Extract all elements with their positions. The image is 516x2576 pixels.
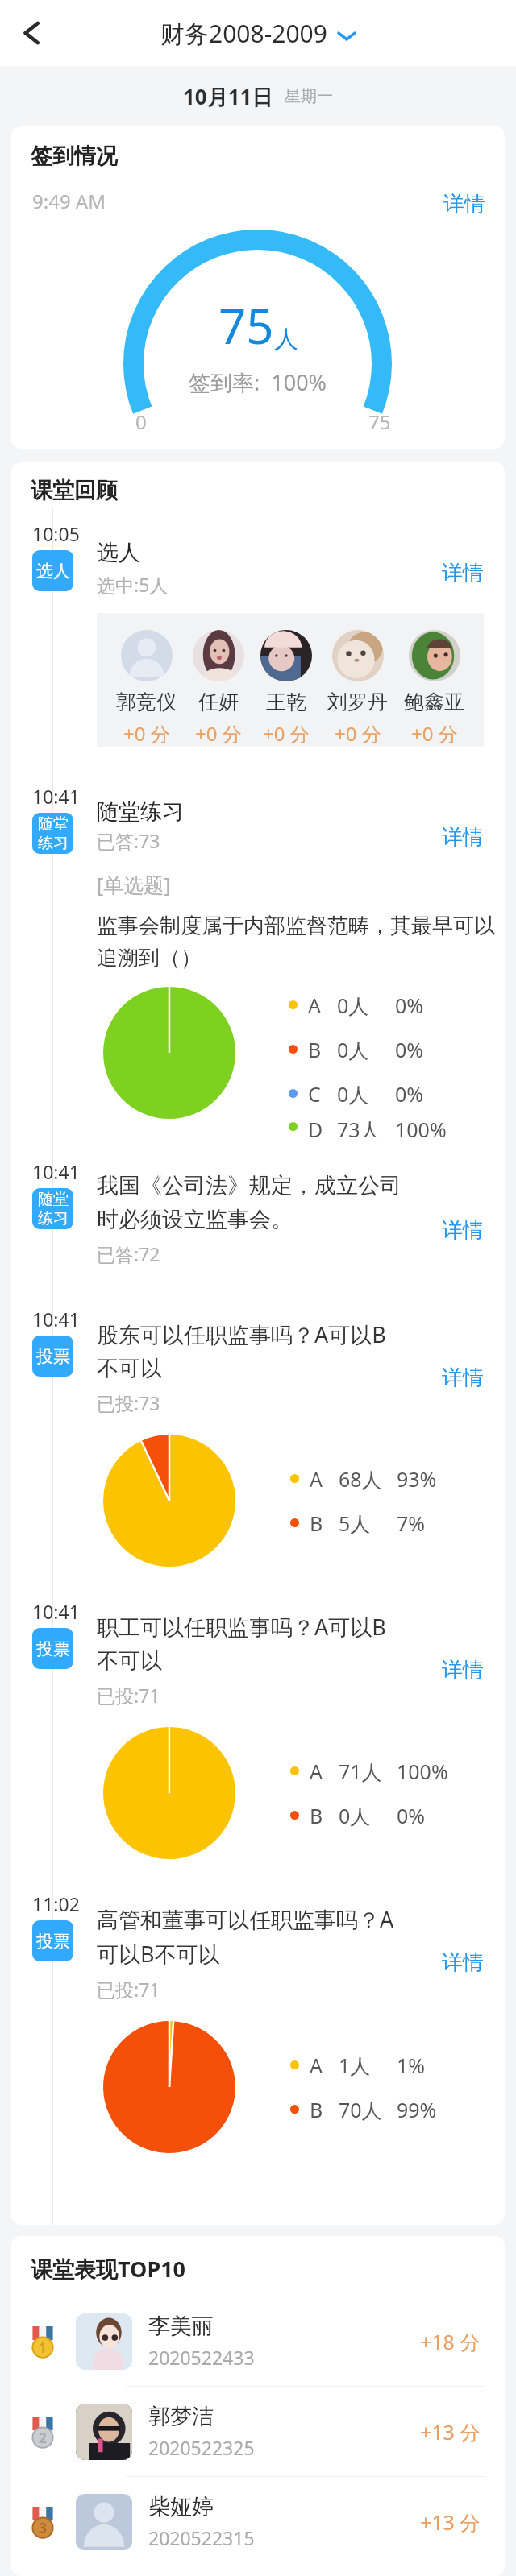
staticText: 2	[39, 2429, 47, 2447]
button[interactable]: 1	[11, 2296, 505, 2387]
button[interactable]: 详情	[442, 1217, 484, 1244]
staticText: 已答:73	[97, 828, 160, 853]
staticText: 王乾	[266, 690, 306, 714]
staticText: 71人	[339, 1758, 382, 1785]
staticText: 0人	[337, 1080, 369, 1108]
button[interactable]: 详情	[442, 1949, 484, 1976]
staticText: 0人	[337, 1036, 369, 1063]
staticText: 已投:71	[97, 1683, 160, 1708]
staticText: 高管和董事可以任职监事吗？A可以B不可以	[97, 1904, 405, 1969]
button[interactable]: 详情	[442, 1365, 484, 1391]
staticText: 0%	[395, 992, 424, 1019]
staticText: A	[310, 1465, 322, 1493]
staticText: 签到情况	[31, 143, 118, 170]
staticText: 10:41	[32, 1159, 80, 1184]
staticText: 75	[368, 408, 391, 435]
staticText: 70人	[339, 2096, 382, 2123]
staticText: A	[310, 2052, 322, 2079]
staticText: +0 分	[411, 720, 458, 747]
staticText: 郭梦洁	[148, 2403, 214, 2430]
staticText: 随堂	[38, 814, 69, 834]
staticText: 10月11日	[183, 82, 273, 111]
staticText: 随堂练习	[97, 798, 184, 826]
staticText: 93%	[397, 1465, 437, 1493]
staticText: 选中:5人	[97, 572, 169, 597]
button[interactable]: 详情	[442, 824, 484, 851]
staticText: 0%	[395, 1080, 424, 1108]
button[interactable]: Back	[6, 9, 55, 57]
staticText: A	[310, 1758, 322, 1785]
staticText: 68人	[339, 1465, 382, 1493]
staticText: 监事会制度属于内部监督范畴，其最早可以追溯到（）	[97, 913, 495, 971]
staticText: 0%	[397, 1802, 426, 1829]
staticText: 投票	[36, 1931, 70, 1952]
staticText: B	[310, 1802, 323, 1829]
staticText: 练习	[38, 834, 69, 853]
staticText: 已投:73	[97, 1390, 160, 1415]
button[interactable]: 详情	[443, 191, 485, 217]
staticText: 100%	[397, 1758, 448, 1785]
button[interactable]: 3	[11, 2477, 505, 2566]
staticText: 投票	[36, 1346, 70, 1367]
staticText: 0%	[395, 1036, 424, 1063]
staticText: 0	[135, 408, 147, 435]
staticText: 选人	[97, 539, 140, 566]
staticText: 5人	[339, 1510, 371, 1537]
staticText: 选人	[36, 561, 70, 582]
staticText: 李美丽	[148, 2313, 214, 2340]
staticText: 1%	[397, 2052, 426, 2079]
button[interactable]: 2	[11, 2387, 505, 2477]
staticText: B	[308, 1036, 322, 1063]
staticText: D	[308, 1116, 323, 1137]
staticText: A	[308, 992, 321, 1019]
staticText: 100%	[395, 1116, 447, 1137]
staticText: 随堂	[38, 1190, 69, 1209]
staticText: 1	[39, 2338, 47, 2357]
staticText: 职工可以任职监事吗？A可以B不可以	[97, 1612, 405, 1675]
staticText: 人	[274, 324, 298, 354]
staticText: +13 分	[420, 2508, 481, 2536]
staticText: +0 分	[263, 720, 310, 747]
staticText: C	[308, 1080, 321, 1108]
staticText: 0人	[339, 1802, 371, 1829]
staticText: 签到率: 100%	[189, 367, 327, 397]
staticText: +13 分	[420, 2418, 481, 2446]
staticText: 鲍鑫亚	[404, 690, 464, 714]
staticText: 郭竞仪	[116, 690, 177, 714]
staticText: 2020522315	[148, 2525, 255, 2550]
staticText: 3	[39, 2519, 47, 2537]
staticText: 投票	[36, 1638, 70, 1659]
staticText: 99%	[397, 2096, 437, 2123]
staticText: 10:41	[32, 1307, 80, 1331]
staticText: [单选题]	[97, 871, 171, 898]
staticText: 2020522325	[148, 2435, 255, 2460]
staticText: B	[310, 1510, 323, 1537]
staticText: 9:49 AM	[32, 188, 106, 214]
staticText: 73人	[337, 1116, 381, 1137]
staticText: 已投:71	[97, 1977, 160, 2002]
staticText: 10:41	[32, 784, 80, 809]
button[interactable]: 详情	[442, 560, 484, 586]
staticText: 课堂回顾	[31, 477, 118, 504]
staticText: 刘罗丹	[327, 690, 388, 714]
staticText: 已答:72	[97, 1241, 160, 1266]
staticText: 课堂表现TOP10	[31, 2254, 186, 2284]
staticText: 任妍	[198, 690, 239, 714]
button[interactable]: 财务2008-2009	[160, 17, 356, 50]
staticText: 7%	[397, 1510, 426, 1537]
staticText: 星期一	[285, 86, 333, 106]
staticText: 柴娅婷	[148, 2493, 214, 2520]
staticText: 10:41	[32, 1599, 80, 1624]
staticText: 我国《公司法》规定，成立公司时必须设立监事会。	[97, 1172, 405, 1233]
staticText: 0人	[337, 992, 369, 1019]
staticText: 股东可以任职监事吗？A可以B不可以	[97, 1319, 405, 1382]
staticText: 练习	[38, 1209, 69, 1228]
staticText: +0 分	[335, 720, 381, 747]
staticText: B	[310, 2096, 323, 2123]
staticText: +0 分	[123, 720, 170, 747]
staticText: +18 分	[420, 2328, 481, 2355]
staticText: +0 分	[195, 720, 242, 747]
staticText: 75	[218, 292, 274, 358]
button[interactable]: 详情	[442, 1657, 484, 1684]
staticText: 1人	[339, 2052, 371, 2079]
